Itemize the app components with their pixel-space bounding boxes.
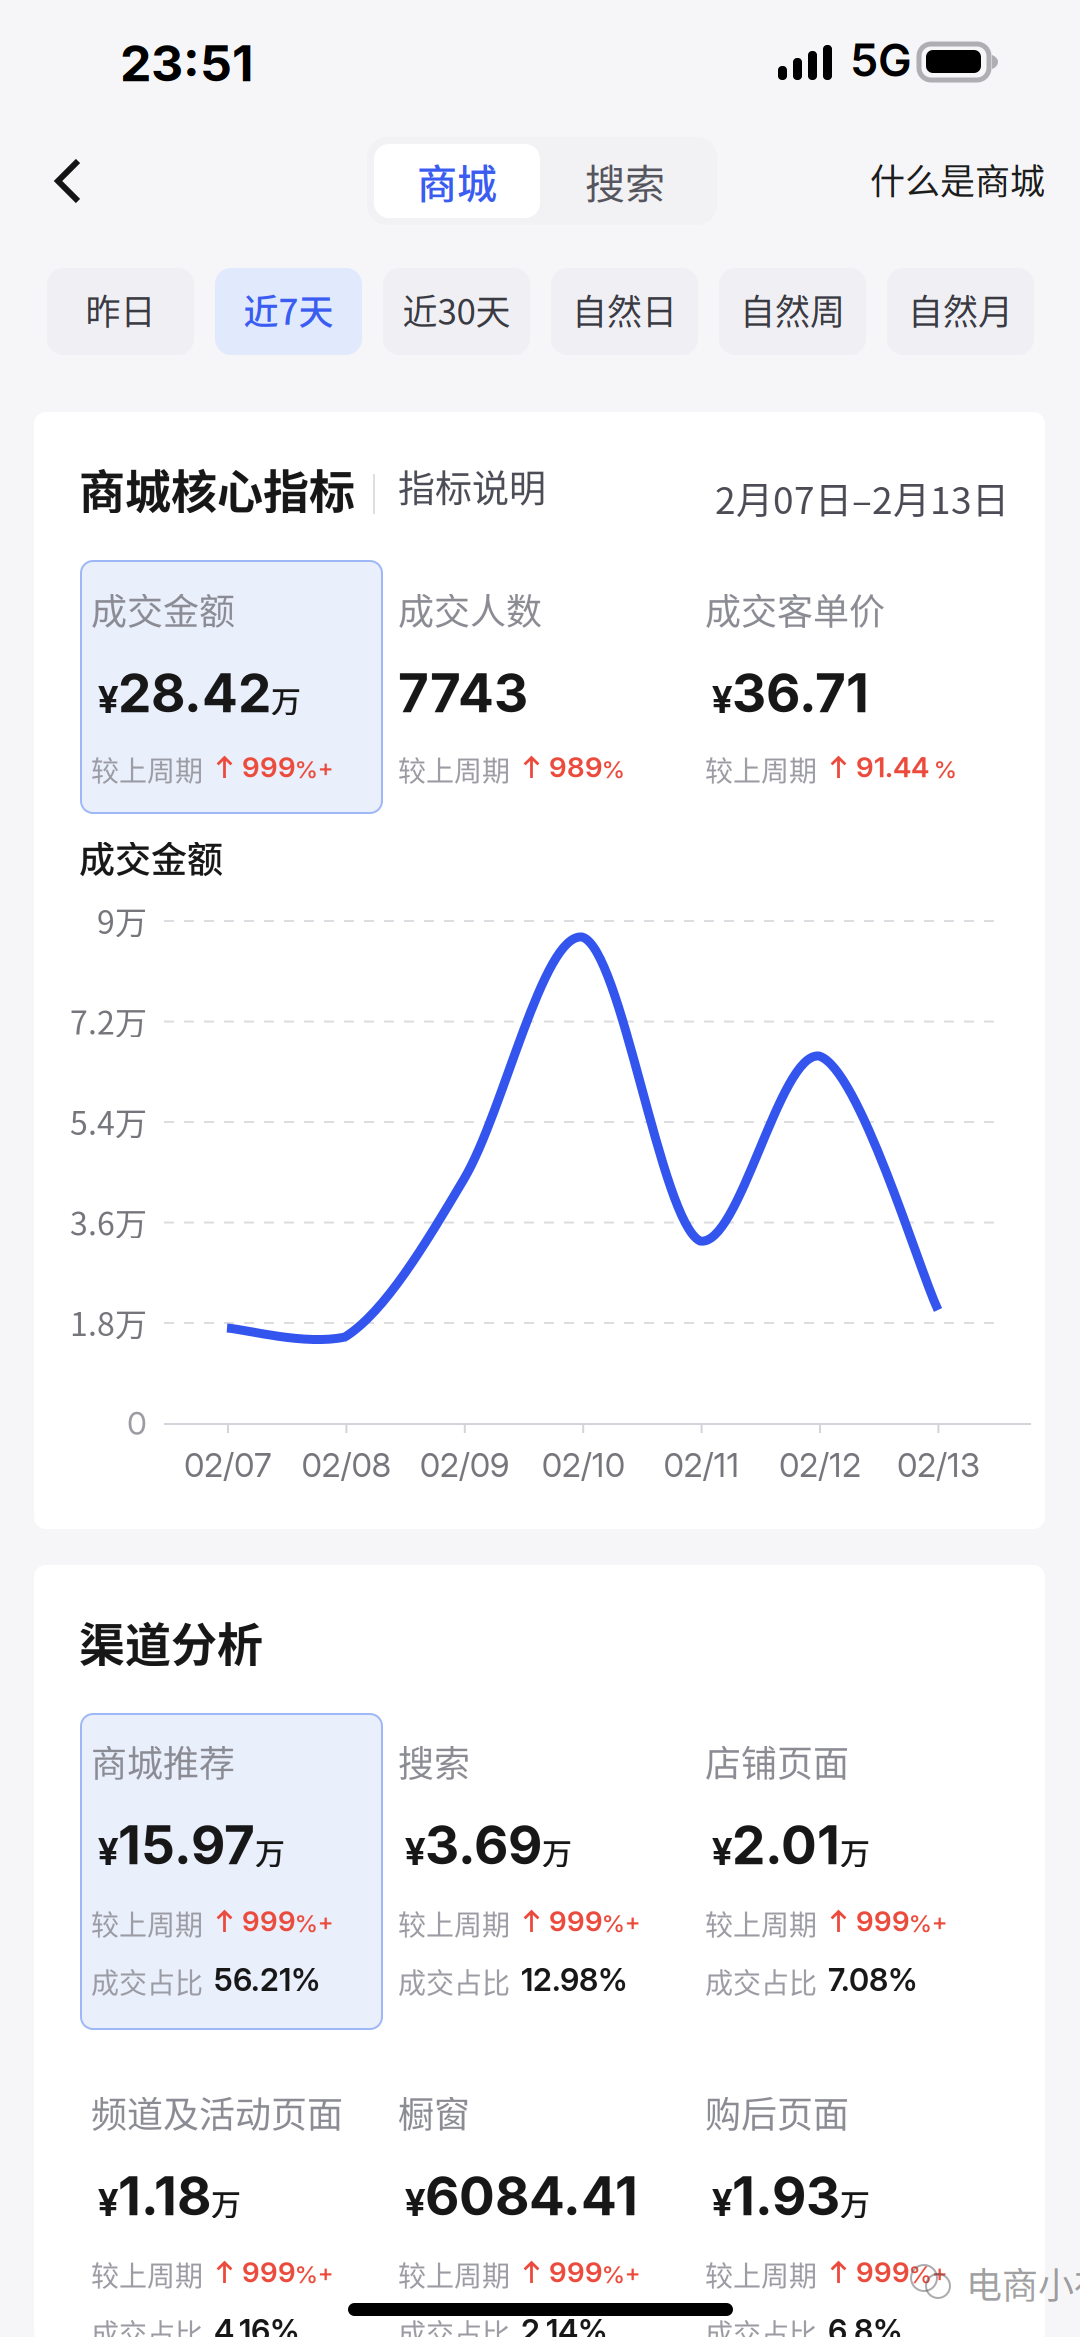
staticText: 频道及活动页面 (91, 2086, 343, 2138)
staticText: 较上周期 (91, 749, 203, 789)
staticText: 999 (856, 1904, 910, 1938)
button[interactable]: 自然日 (551, 268, 698, 355)
button[interactable]: 搜索 (540, 144, 710, 218)
staticText: 成交客单价 (705, 583, 885, 635)
button[interactable]: 近7天 (215, 268, 362, 355)
button[interactable]: 搜索 (399, 1749, 694, 1999)
staticText: 成交占比 (705, 1961, 817, 2001)
staticText: 2月07日–2月13日 (715, 471, 1009, 525)
staticText: 成交占比 (91, 2312, 203, 2337)
staticText: 7.2万 (70, 997, 147, 1044)
staticText: 万 (271, 678, 301, 721)
staticText: 店铺页面 (705, 1735, 849, 1787)
staticText: 6.8% (828, 2312, 903, 2337)
staticText: %+ (295, 2260, 334, 2289)
button[interactable]: 返回 (0, 128, 110, 238)
staticText: 1.93 (732, 2164, 840, 2228)
staticText: 自然周 (740, 284, 845, 335)
staticText: 5G (850, 33, 912, 87)
button[interactable]: 橱窗 (399, 2100, 694, 2337)
staticText: 999 (549, 2255, 603, 2289)
staticText: ¥ (712, 2180, 732, 2225)
staticText: 搜索 (398, 1735, 470, 1787)
staticText: 自然日 (572, 284, 677, 335)
staticText: % (602, 755, 625, 784)
staticText: 3.69 (425, 1813, 542, 1877)
button[interactable]: 成交客单价 (706, 594, 996, 784)
staticText: 万 (255, 1830, 285, 1873)
staticText: 较上周期 (705, 1903, 817, 1943)
staticText: ¥ (712, 677, 732, 722)
button[interactable]: 店铺页面 (706, 1749, 1001, 1999)
staticText: 12.98% (521, 1961, 628, 1998)
button[interactable]: 近30天 (383, 268, 530, 355)
staticText: ¥ (712, 1829, 732, 1874)
staticText: 0 (127, 1404, 147, 1442)
staticText: %+ (909, 1909, 948, 1938)
staticText: 什么是商城 (870, 154, 1045, 204)
button[interactable]: 购后页面 (706, 2100, 1001, 2337)
staticText: %+ (602, 2260, 641, 2289)
staticText: 28.42 (118, 661, 271, 725)
button[interactable]: 昨日 (47, 268, 194, 355)
staticText: 万 (211, 2181, 241, 2224)
staticText: 较上周期 (398, 749, 510, 789)
staticText: 万 (542, 1830, 572, 1873)
staticText: 成交占比 (398, 2312, 510, 2337)
button[interactable]: 频道及活动页面 (92, 2100, 387, 2337)
staticText: 较上周期 (398, 2254, 510, 2294)
staticText: 昨日 (85, 284, 155, 335)
staticText: 999 (242, 2255, 296, 2289)
staticText: 成交占比 (398, 1961, 510, 2001)
staticText: 较上周期 (705, 2254, 817, 2294)
staticText: 56.21% (214, 1961, 321, 1998)
staticText: 商城推荐 (91, 1735, 235, 1787)
staticText: 近30天 (402, 284, 510, 335)
staticText: %+ (295, 755, 334, 784)
staticText: 成交占比 (91, 1961, 203, 2001)
staticText: % (934, 755, 957, 784)
staticText: 渠道分析 (79, 1608, 263, 1675)
button[interactable]: 成交人数 (399, 594, 689, 784)
staticText: 2.01 (732, 1813, 840, 1877)
button[interactable]: 自然周 (719, 268, 866, 355)
button[interactable]: 什么是商城 (810, 129, 1045, 229)
staticText: 较上周期 (91, 1903, 203, 1943)
button[interactable]: 指标说明 (398, 460, 558, 512)
staticText: 999 (242, 750, 296, 784)
staticText: 较上周期 (398, 1903, 510, 1943)
staticText: 02/11 (664, 1445, 740, 1485)
staticText: 23:51 (120, 33, 254, 93)
staticText: 999 (856, 2255, 910, 2289)
staticText: 5.4万 (70, 1098, 147, 1144)
staticText: ¥ (98, 677, 118, 722)
staticText: 999 (549, 1904, 603, 1938)
staticText: 搜索 (585, 152, 665, 210)
staticText: %+ (295, 1909, 334, 1938)
staticText: 36.71 (732, 661, 869, 725)
button[interactable]: 自然月 (887, 268, 1034, 355)
staticText: 999 (242, 1904, 296, 1938)
staticText: 成交占比 (705, 2312, 817, 2337)
staticText: 15.97 (118, 1813, 255, 1877)
button[interactable]: 商城 (374, 144, 540, 218)
staticText: ¥ (405, 2180, 425, 2225)
staticText: %+ (909, 2260, 948, 2289)
button[interactable]: 成交金额 (92, 594, 382, 784)
staticText: 3.6万 (70, 1198, 147, 1245)
staticText: 自然月 (908, 284, 1013, 335)
staticText: 商城核心指标 (79, 455, 355, 522)
staticText: 万 (840, 2181, 870, 2224)
staticText: 购后页面 (705, 2086, 849, 2138)
staticText: 商城 (417, 152, 497, 210)
staticText: 02/12 (779, 1445, 861, 1485)
staticText: 指标说明 (398, 459, 546, 513)
staticText: 02/10 (542, 1445, 625, 1485)
staticText: 9万 (97, 897, 147, 943)
staticText: 较上周期 (91, 2254, 203, 2294)
staticText: 橱窗 (398, 2086, 470, 2138)
staticText: 7.08% (828, 1961, 918, 1998)
button[interactable]: 商城推荐 (92, 1749, 387, 1999)
staticText: 万 (840, 1830, 870, 1873)
staticText: 电商小布 (966, 2257, 1080, 2309)
